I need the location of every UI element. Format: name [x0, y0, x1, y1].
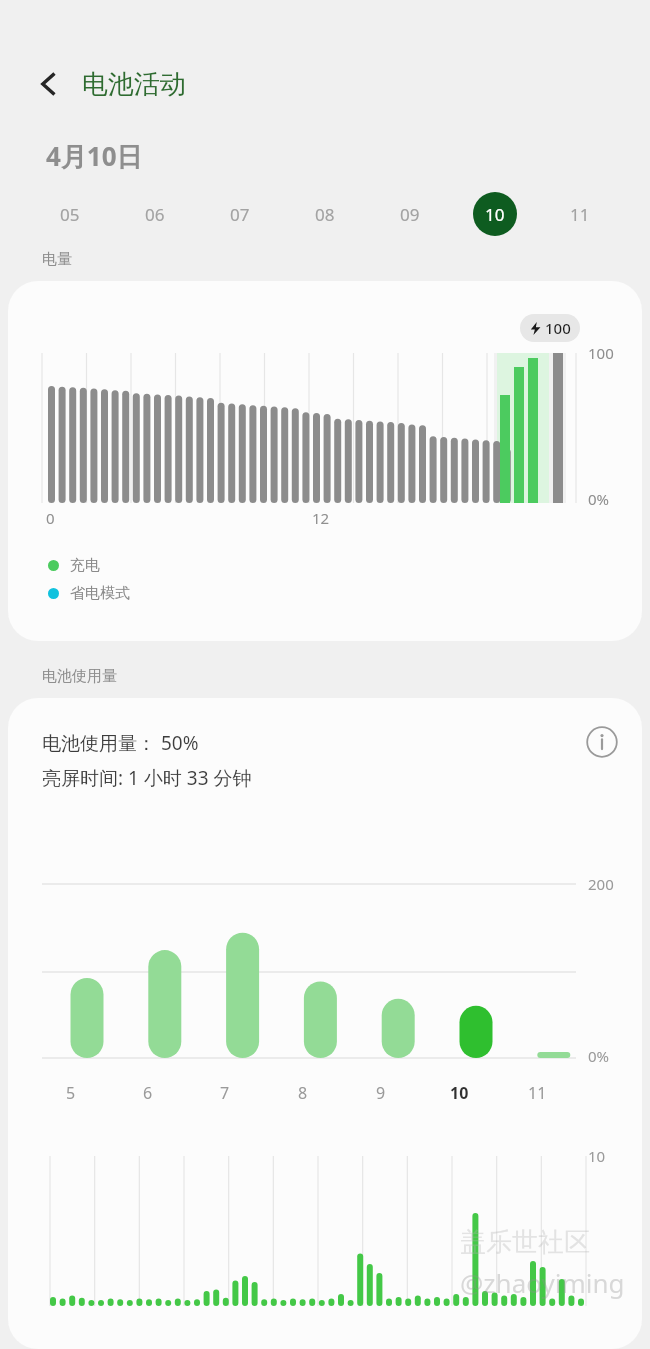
staticText: 亮屏时间: 1 小时 33 分钟 [42, 765, 252, 791]
staticText: 盖乐世社区 [460, 1226, 590, 1259]
staticText: 07 [230, 203, 250, 226]
staticText: 9 [376, 1082, 386, 1104]
button[interactable]: 电池使用量： 50% [8, 698, 642, 1349]
staticText: @zhaoyiming [460, 1265, 625, 1300]
staticText: 5 [66, 1082, 76, 1104]
staticText: 电池使用量： 50% [42, 730, 199, 756]
staticText: 100 [588, 343, 614, 363]
staticText: 电池活动 [82, 68, 186, 101]
button[interactable]: Information [580, 720, 624, 764]
button[interactable]: 08 [282, 186, 367, 242]
staticText: 充电 [70, 556, 100, 575]
button[interactable]: Back [24, 60, 72, 108]
staticText: 11 [570, 203, 590, 226]
staticText: 0% [588, 1046, 610, 1066]
button[interactable]: 10 [452, 186, 537, 242]
staticText: 09 [400, 203, 420, 226]
button[interactable]: 05 [28, 186, 112, 242]
button[interactable]: 100 [8, 281, 642, 641]
staticText: 10 [588, 1146, 606, 1166]
staticText: 05 [60, 203, 80, 226]
button[interactable]: 06 [112, 186, 197, 242]
staticText: 0% [588, 489, 610, 509]
staticText: 100 [545, 318, 571, 338]
staticText: 电量 [42, 250, 72, 269]
staticText: 11 [528, 1082, 547, 1104]
staticText: 0 [46, 508, 55, 528]
staticText: 电池使用量 [42, 667, 117, 686]
staticText: 200 [588, 874, 614, 894]
button[interactable]: 09 [367, 186, 452, 242]
staticText: 8 [298, 1082, 308, 1104]
staticText: 省电模式 [70, 584, 130, 603]
staticText: 10 [450, 1082, 469, 1104]
button[interactable]: 07 [197, 186, 282, 242]
staticText: 10 [485, 203, 505, 226]
staticText: 08 [315, 203, 335, 226]
staticText: 06 [145, 203, 165, 226]
button[interactable]: 11 [537, 186, 622, 242]
staticText: 12 [312, 508, 330, 528]
staticText: 4月10日 [46, 138, 143, 174]
staticText: 7 [220, 1082, 230, 1104]
staticText: 6 [143, 1082, 153, 1104]
